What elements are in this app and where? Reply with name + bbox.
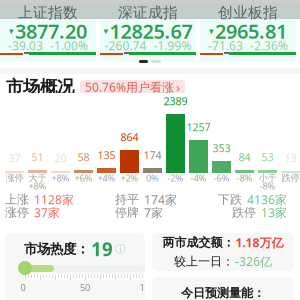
button[interactable]: 两市成交额： xyxy=(152,233,294,271)
staticText: ▾ xyxy=(103,26,108,36)
staticText: 小于 xyxy=(258,172,276,184)
staticText: 市场概况 xyxy=(6,76,74,98)
staticText: 19 xyxy=(91,237,113,261)
staticText: 创业板指 xyxy=(218,3,278,21)
staticText: 持平 xyxy=(115,192,139,207)
staticText: 100 xyxy=(139,281,154,294)
staticText: 创业板指 xyxy=(218,3,278,21)
button[interactable]: 上证指数 xyxy=(0,0,96,61)
staticText: -1.00% xyxy=(50,37,88,53)
staticText: ▾ xyxy=(9,26,14,36)
staticText: 今日预测量能： xyxy=(181,286,265,300)
staticText: 涨停 xyxy=(5,172,23,184)
staticText: 深证成指 xyxy=(118,3,178,21)
staticText: -260.74 xyxy=(104,37,146,53)
button[interactable]: 深证成指 xyxy=(100,0,196,61)
staticText: -8% xyxy=(259,180,275,192)
staticText: › xyxy=(176,78,180,96)
staticText: +4% xyxy=(97,172,115,184)
staticText: -2% xyxy=(167,172,183,184)
staticText: 1257 xyxy=(186,120,210,134)
staticText: 深证成指 xyxy=(118,3,178,21)
staticText: 37 xyxy=(8,151,20,165)
staticText: 135 xyxy=(97,148,115,162)
staticText: 3877.20 xyxy=(15,18,87,44)
staticText: 37家 xyxy=(34,204,60,220)
staticText: 涨停 xyxy=(5,205,29,220)
staticText: +8% xyxy=(51,172,69,184)
staticText: 大于 xyxy=(28,172,46,184)
staticText: -71.63 xyxy=(208,37,243,53)
staticText: 上涨 xyxy=(5,192,29,207)
staticText: +2% xyxy=(120,172,138,184)
staticText: -1.99% xyxy=(153,37,191,53)
staticText: 上证指数 xyxy=(18,3,78,21)
staticText: 20 xyxy=(54,151,66,165)
staticText: 50 xyxy=(80,281,90,294)
staticText: -2.36% xyxy=(250,37,288,53)
staticText: ▾ xyxy=(209,26,214,36)
staticText: 0 xyxy=(20,281,25,294)
staticText: -39.03 xyxy=(8,37,43,53)
staticText: 较上一日： xyxy=(174,254,234,269)
staticText: 50.76%用户看涨 xyxy=(85,79,174,95)
staticText: 174 xyxy=(143,148,161,162)
staticText: -326亿 xyxy=(235,253,272,269)
staticText: 864 xyxy=(120,130,138,144)
staticText: 53 xyxy=(261,150,273,164)
button[interactable]: 50.76%用户看涨 xyxy=(80,80,185,94)
staticText: 1128家 xyxy=(34,191,74,207)
button[interactable]: 今日预测量能： xyxy=(152,277,294,300)
staticText: +6% xyxy=(74,172,92,184)
staticText: 13家 xyxy=(261,204,287,220)
staticText: -6% xyxy=(213,172,229,184)
staticText: 市场热度： xyxy=(24,241,89,257)
staticText: 174家 xyxy=(144,191,177,207)
staticText: 上证指数 xyxy=(18,3,78,21)
staticText: 13 xyxy=(284,151,296,165)
staticText: 12825.67 xyxy=(109,18,192,44)
staticText: +8% xyxy=(28,180,46,192)
staticText: 4136家 xyxy=(247,191,287,207)
button[interactable]: 创业板指 xyxy=(200,0,296,61)
staticText: 0% xyxy=(146,172,159,184)
staticText: 2389 xyxy=(163,94,187,108)
staticText: 停牌 xyxy=(115,205,139,220)
staticText: 跌停 xyxy=(232,205,256,220)
staticText: 84 xyxy=(238,150,250,164)
staticText: 跌停 xyxy=(281,172,299,184)
staticText: 两市成交额： xyxy=(162,235,234,250)
button[interactable]: 市场热度： xyxy=(5,233,145,300)
staticText: -4% xyxy=(190,172,206,184)
staticText: ⓘ xyxy=(115,242,126,255)
staticText: -8% xyxy=(236,172,252,184)
staticText: 51 xyxy=(31,150,43,164)
staticText: 353 xyxy=(212,141,230,155)
staticText: 下跌 xyxy=(218,192,242,207)
staticText: 2965.81 xyxy=(215,18,287,44)
staticText: 1.18万亿 xyxy=(235,235,283,250)
staticText: 58 xyxy=(77,150,89,164)
staticText: 7家 xyxy=(144,204,163,220)
